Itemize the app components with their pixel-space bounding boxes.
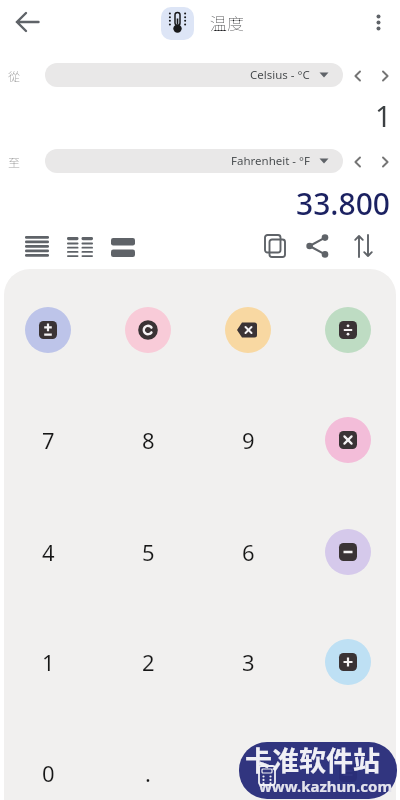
staticText: . bbox=[145, 758, 151, 788]
button[interactable]: 8 bbox=[120, 412, 176, 468]
button[interactable] bbox=[325, 529, 371, 575]
button[interactable] bbox=[161, 7, 194, 40]
button[interactable] bbox=[325, 639, 371, 685]
button[interactable]: 0 bbox=[20, 745, 76, 800]
button[interactable] bbox=[350, 154, 365, 169]
button[interactable] bbox=[360, 4, 396, 40]
staticText: 3 bbox=[242, 647, 255, 677]
staticText: 9 bbox=[242, 425, 255, 455]
button[interactable] bbox=[106, 230, 140, 264]
button[interactable] bbox=[20, 230, 54, 264]
button[interactable]: 7 bbox=[20, 412, 76, 468]
staticText: 從 bbox=[8, 67, 21, 84]
staticText: www.kazhun.com bbox=[259, 776, 393, 796]
button[interactable] bbox=[5, 0, 49, 44]
button[interactable]: 4 bbox=[20, 524, 76, 580]
button[interactable] bbox=[377, 154, 392, 169]
button[interactable] bbox=[62, 230, 98, 266]
button[interactable] bbox=[125, 307, 171, 353]
staticText: 8 bbox=[142, 425, 155, 455]
staticText: Fahrenheit - °F bbox=[231, 153, 310, 169]
button[interactable] bbox=[258, 229, 292, 263]
button[interactable]: Fahrenheit - °F bbox=[45, 149, 343, 173]
staticText: 温度 bbox=[210, 10, 244, 35]
staticText: 33.800 bbox=[296, 183, 390, 224]
button[interactable] bbox=[350, 68, 365, 83]
button[interactable]: 2 bbox=[120, 634, 176, 690]
staticText: 2 bbox=[142, 647, 155, 677]
staticText: 1 bbox=[375, 96, 392, 135]
button[interactable]: 5 bbox=[120, 524, 176, 580]
button[interactable]: 1 bbox=[20, 634, 76, 690]
button[interactable]: 3 bbox=[220, 634, 276, 690]
staticText: 4 bbox=[42, 537, 55, 567]
button[interactable]: Celsius - °C bbox=[45, 63, 343, 87]
button[interactable] bbox=[346, 229, 380, 263]
button[interactable]: 6 bbox=[220, 524, 276, 580]
button[interactable] bbox=[25, 307, 71, 353]
staticText: 至 bbox=[8, 153, 21, 170]
staticText: 5 bbox=[142, 537, 155, 567]
staticText: 7 bbox=[42, 425, 55, 455]
button[interactable] bbox=[225, 307, 271, 353]
button[interactable] bbox=[377, 68, 392, 83]
button[interactable]: 9 bbox=[220, 412, 276, 468]
button[interactable] bbox=[300, 229, 334, 263]
staticText: 0 bbox=[42, 758, 55, 788]
staticText: Celsius - °C bbox=[250, 67, 310, 83]
button[interactable] bbox=[325, 307, 371, 353]
button[interactable] bbox=[325, 417, 371, 463]
button[interactable]: . bbox=[120, 745, 176, 800]
staticText: 卡准软件站 bbox=[245, 740, 380, 779]
staticText: 1 bbox=[42, 647, 55, 677]
button[interactable] bbox=[325, 750, 371, 796]
staticText: 6 bbox=[242, 537, 255, 567]
